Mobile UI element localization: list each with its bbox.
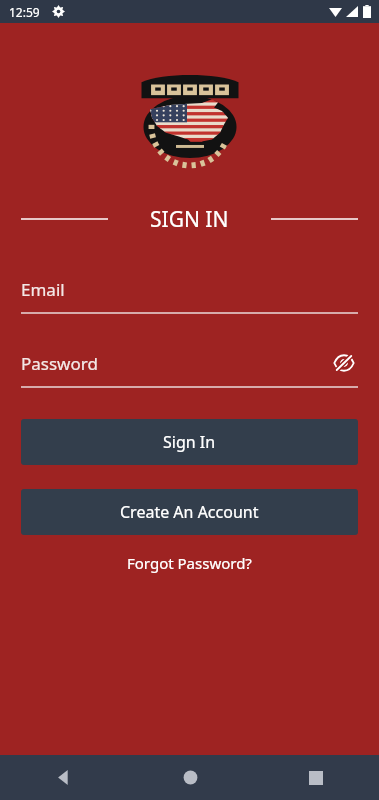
button[interactable]: Email [21,272,358,314]
staticText: Sign In [163,431,216,453]
button[interactable]: Home [127,755,253,800]
button[interactable]: Recent apps [253,755,379,800]
staticText: Forgot Password? [127,553,252,573]
button[interactable]: Password [21,346,358,388]
staticText: Password [21,352,98,375]
button[interactable]: Create An Account [21,489,358,535]
staticText: Create An Account [120,501,259,523]
button[interactable]: Forgot Password? [0,547,379,579]
staticText: SIGN IN [150,205,229,234]
staticText: 12:59 [9,4,40,20]
staticText: Email [21,278,65,301]
button[interactable]: Show password [330,349,358,377]
button[interactable]: Back [0,755,127,800]
button[interactable]: Sign In [21,419,358,465]
